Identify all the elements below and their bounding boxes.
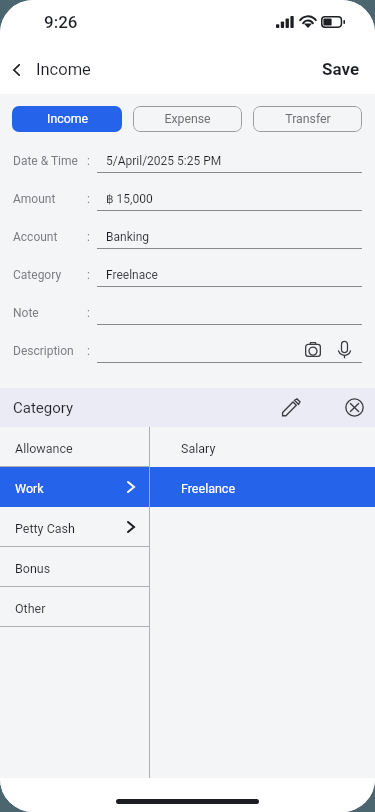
- staticText: Petty Cash: [15, 521, 75, 536]
- button[interactable]: Note: [0, 287, 375, 325]
- staticText: :: [87, 192, 90, 206]
- button[interactable]: Camera: [295, 337, 331, 363]
- button[interactable]: Edit: [271, 388, 310, 427]
- staticText: Work: [15, 481, 44, 496]
- staticText: Income: [47, 112, 88, 126]
- staticText: Freelance: [181, 481, 236, 496]
- button[interactable]: Income: [6, 52, 101, 87]
- button[interactable]: Income: [12, 106, 122, 132]
- staticText: Note: [13, 306, 39, 320]
- staticText: Transfer: [285, 112, 331, 126]
- button[interactable]: Work: [0, 467, 150, 507]
- button[interactable]: Date & Time: [0, 135, 375, 173]
- button[interactable]: Expense: [133, 106, 242, 132]
- button[interactable]: Amount: [0, 173, 375, 211]
- staticText: Freelnace: [106, 268, 158, 282]
- staticText: Banking: [106, 230, 149, 244]
- button[interactable]: Voice input: [331, 337, 358, 363]
- staticText: 9:26: [44, 12, 78, 32]
- staticText: Other: [15, 601, 46, 616]
- button[interactable]: Transfer: [253, 106, 362, 132]
- staticText: Allowance: [15, 441, 73, 456]
- button[interactable]: Other: [0, 587, 150, 627]
- staticText: Amount: [13, 192, 56, 206]
- staticText: Category: [13, 268, 62, 282]
- button[interactable]: Allowance: [0, 427, 150, 467]
- button[interactable]: Salary: [150, 427, 375, 467]
- staticText: Bonus: [15, 561, 51, 576]
- button[interactable]: Description: [0, 325, 375, 363]
- button[interactable]: Bonus: [0, 547, 150, 587]
- staticText: 5/April/2025 5:25 PM: [106, 154, 222, 168]
- staticText: ฿ 15,000: [106, 192, 153, 206]
- staticText: Save: [322, 59, 360, 79]
- button[interactable]: Petty Cash: [0, 507, 150, 547]
- button[interactable]: Freelance: [150, 467, 375, 507]
- staticText: Category: [13, 399, 74, 417]
- button[interactable]: Category: [0, 249, 375, 287]
- button[interactable]: Save: [315, 51, 367, 87]
- staticText: :: [87, 230, 90, 244]
- staticText: Income: [36, 60, 91, 79]
- staticText: Date & Time: [13, 154, 78, 168]
- button[interactable]: Close: [335, 388, 374, 427]
- staticText: :: [87, 154, 90, 168]
- staticText: Account: [13, 230, 58, 244]
- staticText: :: [87, 268, 90, 282]
- staticText: Description: [13, 344, 74, 358]
- staticText: :: [87, 344, 90, 358]
- button[interactable]: Account: [0, 211, 375, 249]
- staticText: Salary: [181, 441, 216, 456]
- staticText: Expense: [164, 112, 211, 126]
- staticText: :: [87, 306, 90, 320]
